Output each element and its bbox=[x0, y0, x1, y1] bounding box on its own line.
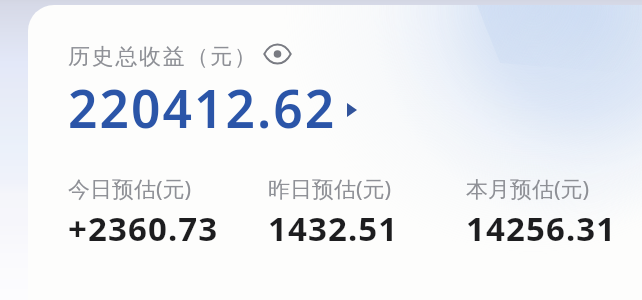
staticText: 本月预估(元) bbox=[466, 173, 590, 203]
staticText: 220412.62 bbox=[68, 73, 337, 143]
button[interactable]: 本月预估(元) bbox=[466, 173, 617, 251]
staticText: 昨日预估(元) bbox=[268, 173, 392, 203]
button[interactable]: Toggle amount visibility bbox=[263, 40, 291, 68]
staticText: 历史总收益（元） bbox=[68, 43, 258, 71]
button[interactable]: 昨日预估(元) bbox=[268, 173, 399, 251]
button[interactable]: 今日预估(元) bbox=[68, 173, 219, 251]
button[interactable]: Open total earnings detail bbox=[343, 101, 361, 119]
staticText: 今日预估(元) bbox=[68, 173, 192, 203]
staticText: 1432.51 bbox=[268, 206, 399, 251]
staticText: 14256.31 bbox=[466, 206, 617, 251]
staticText: +2360.73 bbox=[68, 206, 219, 251]
